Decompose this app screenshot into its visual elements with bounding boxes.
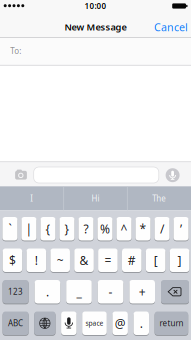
button[interactable]: / bbox=[154, 217, 170, 240]
staticText: + bbox=[139, 284, 146, 300]
button[interactable]: Message field bbox=[34, 167, 159, 183]
button[interactable]: ’ bbox=[173, 217, 189, 240]
staticText: ? bbox=[83, 221, 88, 237]
button[interactable]: | bbox=[21, 217, 36, 240]
staticText: 10:00 bbox=[84, 1, 106, 11]
button[interactable]: ? bbox=[78, 217, 93, 240]
staticText: New Message bbox=[64, 21, 126, 33]
staticText: ’ bbox=[180, 221, 182, 237]
staticText: To: bbox=[10, 45, 21, 56]
staticText: [ bbox=[154, 252, 158, 268]
button[interactable]: The bbox=[128, 186, 190, 210]
staticText: return bbox=[159, 318, 183, 328]
staticText: | bbox=[25, 221, 32, 237]
staticText: # bbox=[128, 252, 136, 268]
staticText: I bbox=[30, 193, 33, 204]
staticText: $ bbox=[9, 252, 16, 268]
staticText: % bbox=[100, 221, 110, 237]
staticText: ~ bbox=[57, 252, 64, 268]
button[interactable]: ~ bbox=[50, 248, 70, 272]
button[interactable]: Camera bbox=[11, 164, 31, 184]
button[interactable]: + bbox=[129, 280, 155, 303]
staticText: ` bbox=[8, 221, 11, 237]
button[interactable]: $ bbox=[3, 248, 22, 272]
button[interactable]: ] bbox=[170, 248, 189, 272]
button[interactable]: ` bbox=[2, 217, 17, 240]
button[interactable]: I bbox=[1, 186, 63, 210]
staticText: 123 bbox=[8, 286, 23, 297]
button[interactable]: . bbox=[133, 311, 149, 335]
staticText: * bbox=[139, 221, 146, 237]
staticText: - bbox=[109, 284, 113, 300]
staticText: ] bbox=[178, 252, 182, 268]
staticText: / bbox=[160, 221, 164, 237]
button[interactable]: Delete bbox=[161, 280, 189, 303]
button[interactable]: @ bbox=[112, 311, 128, 335]
staticText: Cancel bbox=[154, 20, 188, 34]
button[interactable]: # bbox=[122, 248, 142, 272]
staticText: ABC bbox=[8, 318, 23, 328]
staticText: The bbox=[152, 193, 166, 204]
button[interactable]: ! bbox=[26, 248, 46, 272]
button[interactable]: Record audio bbox=[166, 168, 180, 182]
button[interactable]: Cancel bbox=[150, 14, 191, 40]
staticText: _ bbox=[76, 284, 81, 300]
button[interactable]: % bbox=[97, 217, 113, 240]
staticText: { bbox=[45, 221, 50, 237]
staticText: } bbox=[64, 221, 69, 237]
staticText: Hi bbox=[91, 193, 99, 204]
button[interactable]: Dictate bbox=[61, 311, 77, 335]
button[interactable]: ^ bbox=[116, 217, 132, 240]
button[interactable]: { bbox=[40, 217, 55, 240]
staticText: ! bbox=[35, 252, 38, 268]
button[interactable]: To bbox=[0, 37, 191, 65]
staticText: . bbox=[140, 315, 143, 331]
button[interactable]: Next keyboard bbox=[34, 311, 55, 335]
button[interactable]: space bbox=[82, 311, 107, 335]
button[interactable]: } bbox=[59, 217, 74, 240]
button[interactable]: = bbox=[98, 248, 118, 272]
button[interactable]: & bbox=[74, 248, 94, 272]
button[interactable]: _ bbox=[66, 280, 92, 303]
button[interactable]: [ bbox=[146, 248, 165, 272]
staticText: space bbox=[85, 319, 103, 328]
staticText: ^ bbox=[120, 221, 127, 237]
staticText: @ bbox=[115, 315, 126, 331]
button[interactable]: * bbox=[135, 217, 151, 240]
button[interactable]: return bbox=[155, 311, 188, 335]
staticText: . bbox=[46, 284, 49, 300]
button[interactable]: - bbox=[98, 280, 123, 303]
button[interactable]: . bbox=[35, 280, 60, 303]
staticText: = bbox=[104, 252, 111, 268]
button[interactable]: ABC bbox=[3, 311, 29, 335]
button[interactable]: 123 bbox=[3, 280, 29, 303]
button[interactable]: Hi bbox=[64, 186, 126, 210]
staticText: & bbox=[79, 252, 88, 268]
